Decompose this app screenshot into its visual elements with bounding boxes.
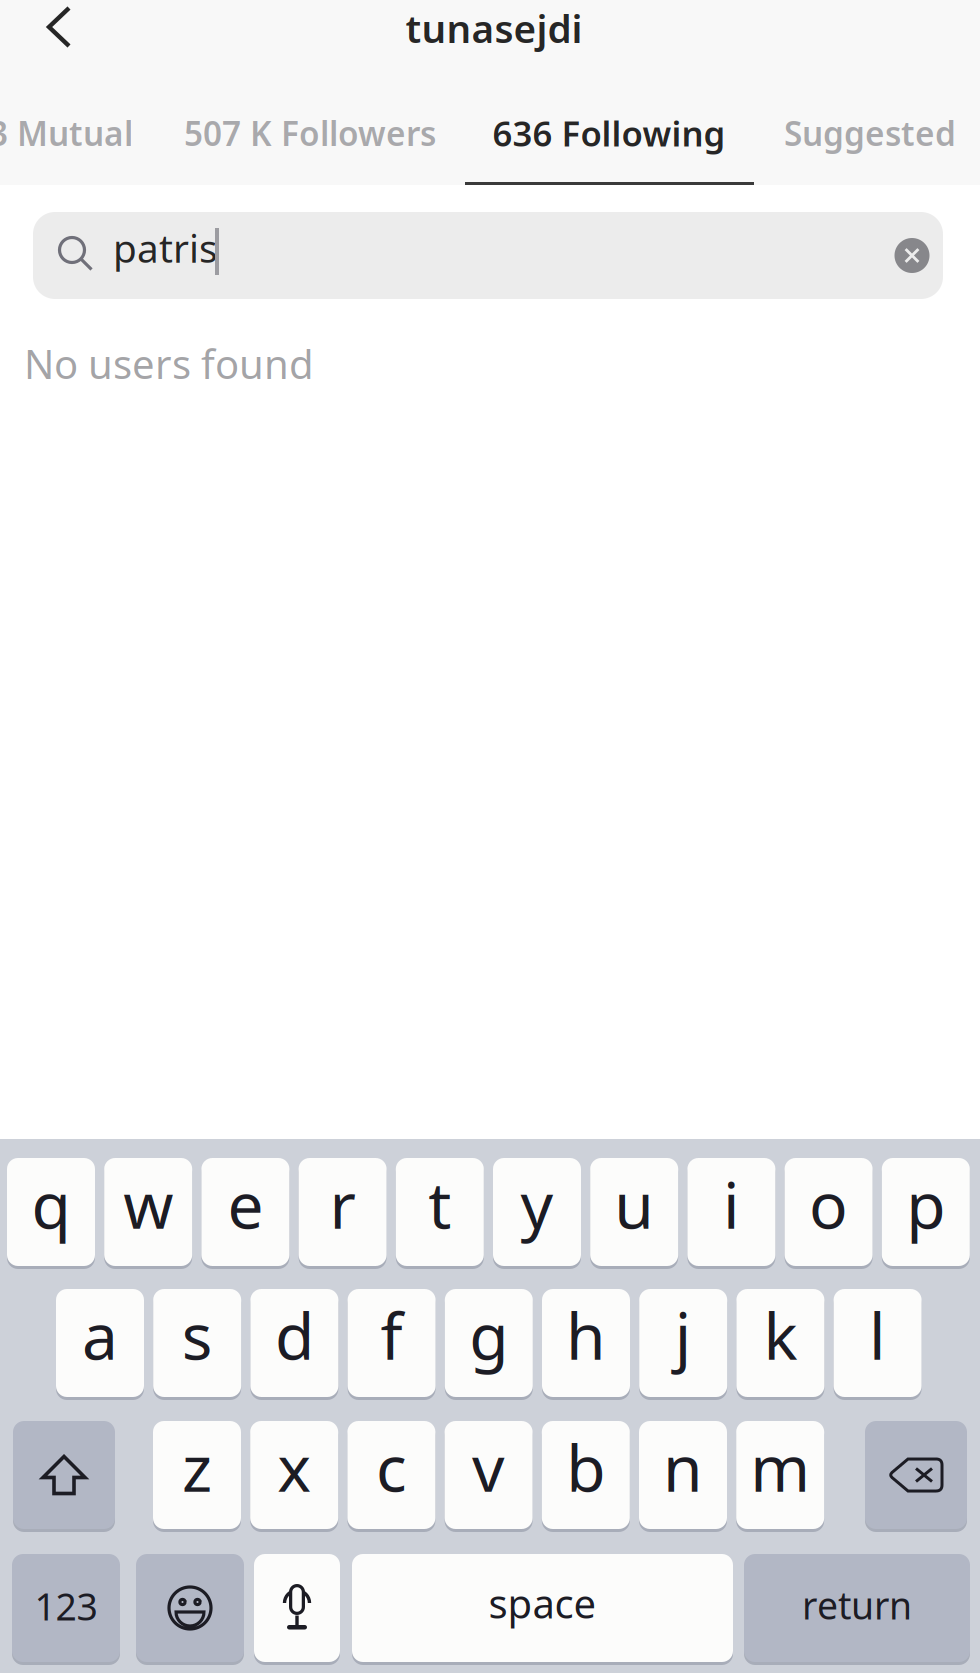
- button[interactable]: g: [445, 1289, 533, 1400]
- staticText: patris: [113, 222, 218, 273]
- button[interactable]: return: [744, 1554, 970, 1665]
- staticText: m: [750, 1424, 810, 1509]
- staticText: q: [31, 1161, 70, 1246]
- staticText: 636 Following: [492, 110, 725, 156]
- staticText: 507 K Followers: [184, 111, 436, 155]
- staticText: 3 Mutual: [0, 111, 133, 155]
- staticText: w: [123, 1161, 173, 1246]
- staticText: d: [275, 1292, 314, 1377]
- staticText: v: [472, 1424, 505, 1509]
- button[interactable]: j: [639, 1289, 727, 1400]
- button[interactable]: 636 Following: [469, 90, 749, 176]
- staticText: s: [182, 1292, 213, 1377]
- staticText: r: [330, 1161, 356, 1246]
- button[interactable]: s: [153, 1289, 241, 1400]
- button[interactable]: q: [7, 1158, 95, 1269]
- button[interactable]: r: [299, 1158, 387, 1269]
- staticText: Suggested: [784, 111, 956, 155]
- button[interactable]: o: [785, 1158, 873, 1269]
- staticText: No users found: [24, 337, 314, 390]
- button[interactable]: Delete: [865, 1421, 967, 1532]
- staticText: z: [182, 1424, 212, 1509]
- staticText: space: [488, 1576, 596, 1629]
- staticText: i: [723, 1161, 740, 1246]
- staticText: c: [376, 1424, 407, 1509]
- staticText: tunasejdi: [405, 2, 582, 54]
- button[interactable]: Emoji: [136, 1554, 244, 1665]
- staticText: l: [869, 1292, 886, 1377]
- staticText: j: [675, 1292, 692, 1377]
- button[interactable]: f: [348, 1289, 436, 1400]
- button[interactable]: Clear text: [875, 212, 949, 299]
- button[interactable]: t: [396, 1158, 484, 1269]
- button[interactable]: l: [834, 1289, 922, 1400]
- button[interactable]: c: [347, 1421, 435, 1532]
- staticText: u: [614, 1161, 654, 1246]
- button[interactable]: y: [493, 1158, 581, 1269]
- button[interactable]: b: [542, 1421, 630, 1532]
- button[interactable]: Back: [9, 0, 109, 70]
- button[interactable]: z: [153, 1421, 241, 1532]
- staticText: n: [663, 1424, 703, 1509]
- button[interactable]: space: [352, 1554, 733, 1665]
- button[interactable]: Shift: [13, 1421, 115, 1532]
- staticText: k: [763, 1292, 797, 1377]
- button[interactable]: e: [201, 1158, 289, 1269]
- staticText: 123: [34, 1581, 97, 1631]
- button[interactable]: n: [639, 1421, 727, 1532]
- button[interactable]: h: [542, 1289, 630, 1400]
- staticText: f: [381, 1292, 403, 1377]
- button[interactable]: u: [590, 1158, 678, 1269]
- staticText: t: [428, 1161, 451, 1246]
- staticText: a: [82, 1292, 118, 1377]
- button[interactable]: 3 Mutual: [0, 90, 201, 176]
- button[interactable]: a: [56, 1289, 144, 1400]
- button[interactable]: x: [250, 1421, 338, 1532]
- button[interactable]: k: [736, 1289, 824, 1400]
- button[interactable]: v: [445, 1421, 533, 1532]
- staticText: e: [227, 1161, 263, 1246]
- button[interactable]: 507 K Followers: [152, 90, 468, 176]
- staticText: y: [520, 1161, 553, 1246]
- staticText: o: [809, 1161, 848, 1246]
- staticText: h: [566, 1292, 606, 1377]
- button[interactable]: 123: [12, 1554, 120, 1665]
- button[interactable]: i: [687, 1158, 775, 1269]
- staticText: return: [802, 1580, 912, 1630]
- staticText: x: [277, 1424, 311, 1509]
- button[interactable]: w: [104, 1158, 192, 1269]
- staticText: p: [906, 1161, 945, 1246]
- staticText: g: [469, 1292, 508, 1377]
- button[interactable]: Suggested: [755, 90, 980, 176]
- button[interactable]: d: [250, 1289, 338, 1400]
- button[interactable]: m: [736, 1421, 824, 1532]
- staticText: b: [566, 1424, 605, 1509]
- button[interactable]: p: [882, 1158, 970, 1269]
- button[interactable]: Dictation: [254, 1554, 340, 1665]
